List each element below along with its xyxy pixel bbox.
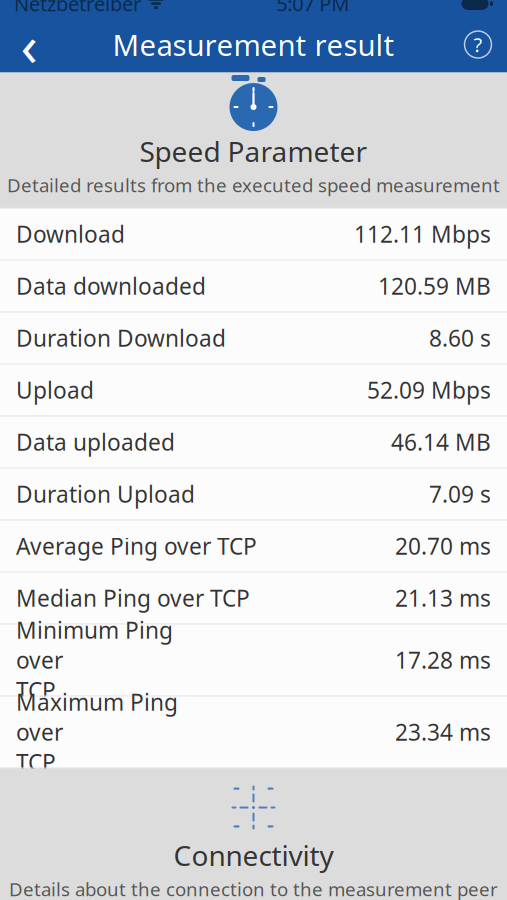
staticText: Detailed results from the executed speed… [7,173,500,197]
button[interactable]: Duration Upload [0,468,507,520]
staticText: 112.11 Mbps [354,219,491,249]
staticText: Minimum Ping over TCP [16,615,173,705]
staticText: Duration Upload [16,479,195,509]
staticText: Upload [16,375,94,405]
staticText: 20.70 ms [395,531,491,561]
staticText: Connectivity [173,836,333,874]
staticText: Data downloaded [16,271,206,301]
staticText: 52.09 Mbps [367,375,491,405]
staticText: 21.13 ms [395,583,491,613]
staticText: ? [473,31,482,58]
staticText: Median Ping over TCP [16,583,250,613]
staticText: Details about the connection to the meas… [9,877,498,900]
staticText: 7.09 s [429,479,491,509]
staticText: Netzbetreiber [14,0,141,17]
staticText: Speed Parameter [139,132,367,170]
staticText: 17.28 ms [395,645,491,675]
button[interactable]: Maximum Ping over TCP [0,696,507,768]
button[interactable]: Help [449,16,507,72]
button[interactable]: Median Ping over TCP [0,572,507,624]
staticText: 5:07 PM [276,0,349,17]
staticText: Duration Download [16,323,226,353]
button[interactable]: Duration Download [0,312,507,364]
staticText: Data uploaded [16,427,175,457]
button[interactable]: Download [0,208,507,260]
button[interactable]: Data downloaded [0,260,507,312]
staticText: 46.14 MB [391,427,491,457]
button[interactable]: Average Ping over TCP [0,520,507,572]
button[interactable]: Back [0,16,58,72]
staticText: Average Ping over TCP [16,531,257,561]
staticText: ‹ [20,7,37,82]
staticText: 120.59 MB [378,271,491,301]
button[interactable]: Minimum Ping over TCP [0,624,507,696]
button[interactable]: Upload [0,364,507,416]
staticText: Download [16,219,125,249]
staticText: Measurement result [112,25,394,64]
staticText: 23.34 ms [395,717,491,747]
button[interactable]: Data uploaded [0,416,507,468]
staticText: 8.60 s [429,323,491,353]
staticText: Maximum Ping over TCP [16,687,178,777]
